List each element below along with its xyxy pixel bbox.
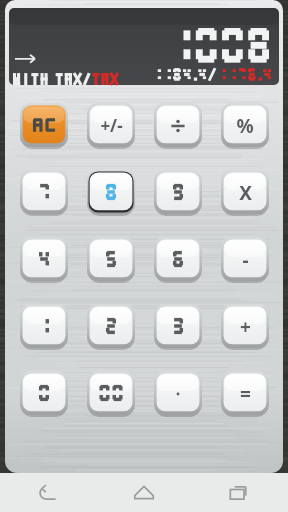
button[interactable] [154,304,202,349]
button[interactable] [154,170,202,215]
button[interactable] [154,103,202,148]
button[interactable]: - [221,237,269,282]
button[interactable]: +/- [87,103,135,148]
button[interactable]: Back [0,473,96,512]
staticText: +/- [100,114,123,137]
button[interactable]: = [221,371,269,416]
staticText: + [240,314,251,340]
staticText: = [240,381,251,407]
button[interactable] [20,237,68,282]
button[interactable] [87,170,135,215]
staticText: - [242,247,249,273]
button[interactable] [87,371,135,416]
staticText: X [239,180,252,206]
button[interactable] [87,237,135,282]
button[interactable]: Recent apps [192,473,288,512]
button[interactable] [20,304,68,349]
button[interactable]: + [221,304,269,349]
staticText: % [236,113,254,139]
button[interactable] [20,170,68,215]
button[interactable] [154,237,202,282]
button[interactable]: X [221,170,269,215]
button[interactable]: % [221,103,269,148]
button[interactable] [20,103,68,148]
button[interactable] [87,304,135,349]
button[interactable] [20,371,68,416]
button[interactable]: Home [96,473,192,512]
button[interactable] [154,371,202,416]
